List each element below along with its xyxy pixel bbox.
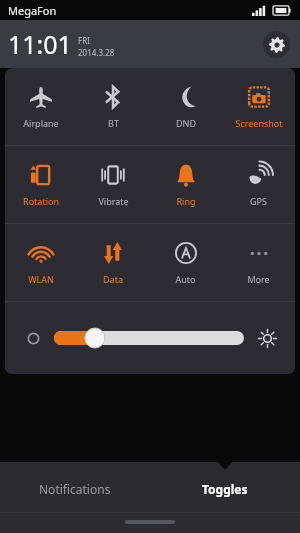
staticText: Airplane bbox=[23, 117, 59, 129]
button[interactable]: Auto bbox=[149, 224, 222, 301]
button[interactable]: BT bbox=[77, 68, 149, 145]
staticText: GPS bbox=[250, 195, 267, 207]
staticText: Auto bbox=[175, 273, 196, 285]
staticText: Toggles bbox=[202, 481, 248, 497]
button[interactable]: Ring bbox=[149, 146, 222, 223]
button[interactable]: GPS bbox=[222, 146, 295, 223]
button[interactable]: Toggles bbox=[150, 468, 300, 510]
button[interactable]: Brightness slider bbox=[54, 326, 244, 350]
staticText: DND bbox=[176, 117, 196, 129]
staticText: MegaFon bbox=[8, 3, 57, 18]
button[interactable]: Settings bbox=[263, 31, 290, 58]
button[interactable]: Notifications bbox=[0, 468, 150, 510]
button[interactable]: Vibrate bbox=[77, 146, 149, 223]
button[interactable]: WLAN bbox=[5, 224, 77, 301]
staticText: 2014.3.28 bbox=[78, 47, 115, 58]
staticText: Ring bbox=[176, 195, 196, 207]
other: Maximum brightness bbox=[258, 329, 277, 348]
staticText: WLAN bbox=[28, 273, 54, 285]
staticText: FRI bbox=[78, 35, 90, 46]
button[interactable]: More bbox=[222, 224, 295, 301]
staticText: 11:01 bbox=[8, 27, 72, 61]
staticText: Rotation bbox=[23, 195, 59, 207]
button[interactable]: Rotation bbox=[5, 146, 77, 223]
button[interactable]: Airplane bbox=[5, 68, 77, 145]
staticText: Screenshot bbox=[235, 117, 283, 129]
button[interactable]: Data bbox=[77, 224, 149, 301]
other: Minimum brightness bbox=[27, 332, 40, 345]
button[interactable]: Screenshot bbox=[222, 68, 295, 145]
staticText: BT bbox=[108, 117, 119, 129]
button[interactable]: DND bbox=[149, 68, 222, 145]
staticText: Vibrate bbox=[98, 195, 129, 207]
staticText: Data bbox=[103, 273, 123, 285]
staticText: More bbox=[247, 273, 270, 285]
staticText: Notifications bbox=[39, 481, 111, 497]
